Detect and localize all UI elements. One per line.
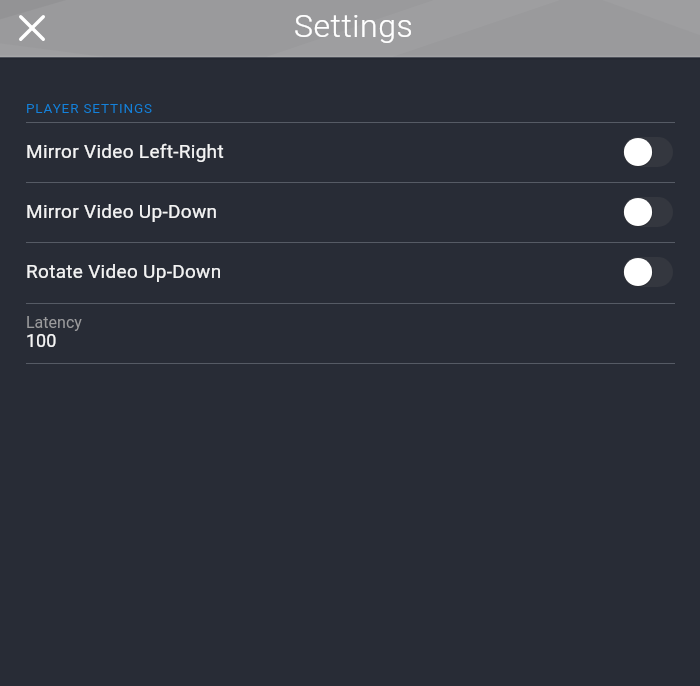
button[interactable]: Close (9, 5, 55, 51)
button[interactable]: Rotate Video Up-Down (0, 243, 700, 302)
button[interactable]: Mirror Video Up-Down (623, 197, 673, 227)
staticText: Latency (26, 313, 82, 332)
staticText: PLAYER SETTINGS (26, 100, 153, 116)
button[interactable]: Mirror Video Up-Down (0, 183, 700, 242)
staticText: Mirror Video Up-Down (26, 200, 623, 222)
button[interactable]: Latency (0, 304, 700, 363)
button[interactable]: Mirror Video Left-Right (0, 123, 700, 182)
staticText: Mirror Video Left-Right (26, 140, 623, 162)
staticText: 100 (26, 330, 57, 351)
staticText: Rotate Video Up-Down (26, 260, 623, 282)
staticText: Settings (294, 7, 414, 45)
button[interactable]: Rotate Video Up-Down (623, 257, 673, 287)
button[interactable]: Mirror Video Left-Right (623, 137, 673, 167)
